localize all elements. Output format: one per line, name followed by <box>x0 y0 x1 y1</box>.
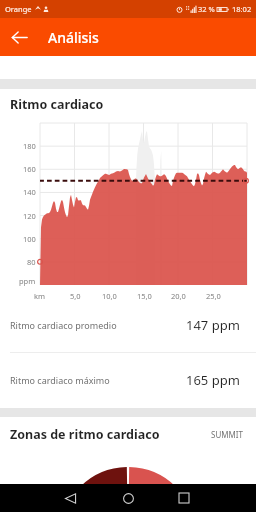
staticText: 120 <box>23 211 36 221</box>
button[interactable]: Back <box>52 484 89 512</box>
staticText: Zonas de ritmo cardiaco <box>10 426 160 443</box>
staticText: 15,0 <box>137 291 152 301</box>
button[interactable]: Ritmo cardiaco máximo <box>0 353 256 407</box>
staticText: Ritmo cardiaco <box>10 96 104 113</box>
button[interactable]: Ritmo cardiaco promedio <box>0 298 256 352</box>
staticText: 165 ppm <box>186 371 240 389</box>
staticText: 20,0 <box>171 291 186 301</box>
staticText: Orange <box>5 4 32 14</box>
staticText: 80 <box>27 257 36 267</box>
staticText: 140 <box>23 187 36 197</box>
staticText: Análisis <box>48 28 99 47</box>
staticText: SUMMIT <box>211 429 243 440</box>
staticText: 10,0 <box>102 291 117 301</box>
staticText: 147 ppm <box>186 316 240 334</box>
staticText: Ritmo cardiaco máximo <box>10 374 110 386</box>
button[interactable]: Back <box>0 18 38 56</box>
button[interactable]: Home <box>110 484 146 512</box>
staticText: 25,0 <box>206 291 221 301</box>
staticText: 160 <box>23 164 36 174</box>
staticText: 5,0 <box>70 291 81 301</box>
staticText: Ritmo cardiaco promedio <box>10 319 117 331</box>
staticText: ppm <box>19 276 36 286</box>
staticText: 100 <box>23 234 36 244</box>
staticText: 18:02 <box>232 4 252 14</box>
staticText: km <box>34 291 46 301</box>
staticText: 32 % <box>198 4 215 14</box>
staticText: 180 <box>23 141 36 151</box>
button[interactable]: Recents <box>166 484 202 512</box>
